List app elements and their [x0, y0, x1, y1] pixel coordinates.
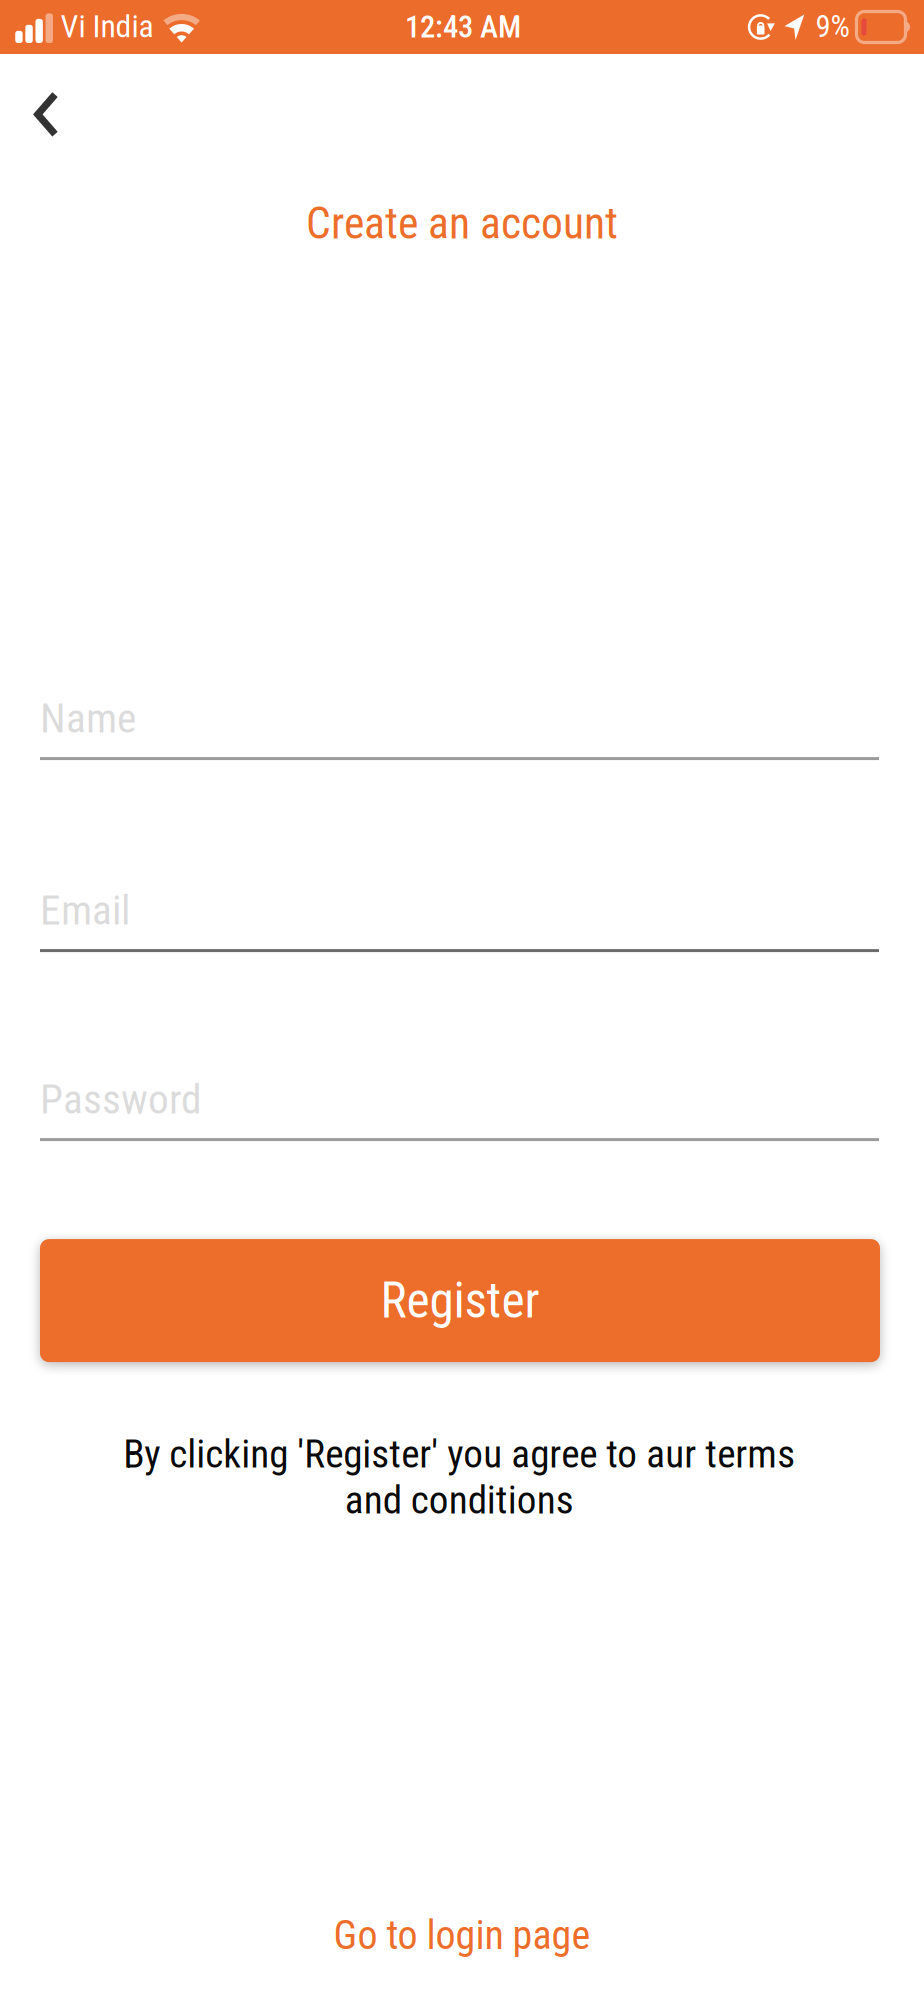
staticText: 12:43 AM: [405, 9, 521, 45]
staticText: 9%: [815, 8, 849, 44]
staticText: Create an account: [306, 198, 618, 249]
button[interactable]: Go to login page: [333, 1912, 590, 1959]
staticText: Password: [40, 1075, 202, 1123]
staticText: Register: [380, 1272, 539, 1329]
button[interactable]: Back: [0, 54, 80, 154]
staticText: Vi India: [61, 8, 154, 45]
button[interactable]: Register: [40, 1239, 880, 1362]
staticText: Email: [40, 886, 130, 934]
staticText: Name: [40, 694, 136, 742]
staticText: Go to login page: [333, 1912, 590, 1959]
staticText: By clicking 'Register' you agree to aur …: [123, 1431, 795, 1523]
